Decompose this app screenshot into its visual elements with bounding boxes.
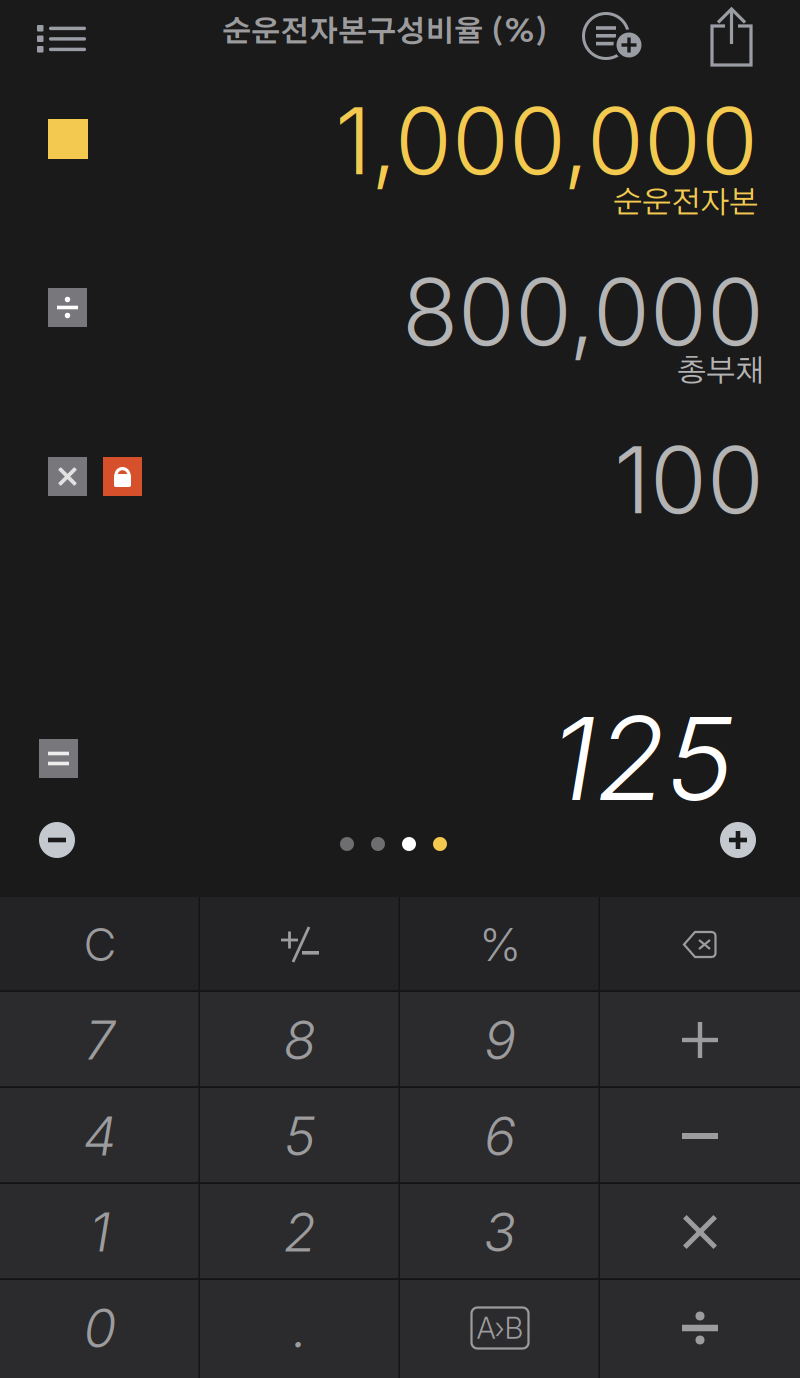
- staticText: 4: [83, 1104, 117, 1168]
- staticText: 총부채: [677, 356, 764, 387]
- button[interactable]: Multiply: [600, 1184, 800, 1280]
- staticText: 8: [283, 1008, 316, 1072]
- button[interactable]: Add: [600, 992, 800, 1088]
- button[interactable]: 3: [400, 1184, 600, 1280]
- button[interactable]: Share: [710, 5, 756, 71]
- button[interactable]: 2: [200, 1184, 400, 1280]
- button[interactable]: C: [0, 897, 200, 992]
- button[interactable]: Formula list: [37, 3, 87, 59]
- staticText: 5: [284, 1104, 316, 1168]
- button[interactable]: 6: [400, 1088, 600, 1184]
- button[interactable]: 0: [0, 1280, 200, 1378]
- staticText: 800,000: [402, 256, 764, 367]
- button[interactable]: 5: [200, 1088, 400, 1184]
- button[interactable]: Delete: [600, 897, 800, 992]
- staticText: 9: [484, 1008, 516, 1072]
- button[interactable]: Convert: [400, 1280, 600, 1378]
- button[interactable]: 4: [0, 1088, 200, 1184]
- staticText: 6: [484, 1104, 516, 1168]
- button[interactable]: Divide: [600, 1280, 800, 1378]
- staticText: 2: [283, 1200, 316, 1264]
- button[interactable]: Toggle sign: [200, 897, 400, 992]
- staticText: 순운전자본: [613, 188, 758, 219]
- button[interactable]: Add operand: [716, 818, 760, 862]
- staticText: 3: [483, 1200, 516, 1264]
- staticText: 100: [614, 424, 764, 535]
- staticText: 125: [551, 689, 734, 828]
- staticText: 7: [85, 1008, 115, 1072]
- staticText: C: [83, 917, 116, 972]
- button[interactable]: Equals: [39, 739, 78, 778]
- button[interactable]: 8: [200, 992, 400, 1088]
- button[interactable]: %: [400, 897, 600, 992]
- button[interactable]: Locked: [103, 457, 142, 496]
- button[interactable]: 7: [0, 992, 200, 1088]
- button[interactable]: 1: [0, 1184, 200, 1280]
- button[interactable]: 9: [400, 992, 600, 1088]
- button[interactable]: Multiply: [48, 457, 87, 496]
- button[interactable]: New formula: [578, 8, 642, 72]
- button[interactable]: Divide: [48, 288, 87, 327]
- staticText: A›B: [476, 1310, 523, 1346]
- staticText: 1,000,000: [335, 85, 758, 196]
- button[interactable]: Remove operand: [35, 818, 79, 862]
- staticText: .: [292, 1296, 307, 1360]
- staticText: %: [479, 917, 521, 972]
- button[interactable]: .: [200, 1280, 400, 1378]
- staticText: 0: [83, 1296, 116, 1360]
- staticText: 1: [89, 1200, 110, 1264]
- staticText: 순운전자본구성비율 (%): [222, 18, 549, 47]
- button[interactable]: Subtract: [600, 1088, 800, 1184]
